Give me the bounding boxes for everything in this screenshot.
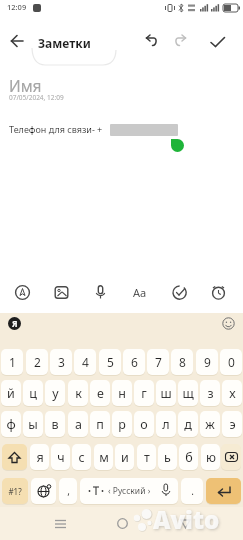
button[interactable] [15,285,30,300]
button[interactable] [180,519,191,529]
button[interactable]: Aa [131,284,149,300]
button[interactable]: о [134,411,154,437]
button[interactable]: к [68,380,88,406]
button[interactable]: б [179,444,198,470]
staticText: в [51,416,59,433]
button[interactable]: , [59,478,77,504]
staticText: Aa [133,285,147,300]
button[interactable] [2,444,27,470]
staticText: й [7,385,15,402]
button[interactable]: с [72,444,91,470]
button[interactable]: ш [156,380,176,406]
button[interactable]: е [90,380,110,406]
staticText: Имя [9,75,42,96]
button[interactable]: ь [158,444,177,470]
staticText: э [229,416,236,433]
button[interactable]: #1? [2,478,28,504]
button[interactable]: з [200,380,220,406]
button[interactable]: 6 [123,349,145,375]
staticText: п [96,416,104,433]
button[interactable] [174,35,190,49]
staticText: ‹ Русский › [108,485,151,497]
staticText: ф [6,416,16,433]
button[interactable]: я [30,444,49,470]
staticText: ч [57,449,65,466]
staticText: #1? [8,486,22,497]
button[interactable] [206,478,241,504]
button[interactable]: Заметки [38,35,91,51]
button[interactable] [10,34,25,48]
button[interactable] [172,285,187,300]
button[interactable]: 7 [147,349,169,375]
staticText: а [75,416,82,433]
button[interactable]: 8 [171,349,193,375]
button[interactable]: т [137,444,156,470]
staticText: е [97,385,104,402]
button[interactable]: й [1,380,21,406]
button[interactable]: ц [23,380,43,406]
staticText: л [162,416,170,433]
staticText: к [75,385,82,402]
staticText: Я [12,318,18,329]
button[interactable] [222,317,235,330]
staticText: з [207,385,214,402]
staticText: 0 [228,354,235,370]
button[interactable] [54,285,69,300]
staticText: б [185,449,193,466]
button[interactable]: ж [200,411,220,437]
button[interactable]: 9 [196,349,218,375]
button[interactable]: ю [201,444,220,470]
staticText: 07/05/2024, 12:09 [9,93,64,102]
button[interactable]: . [181,478,203,504]
button[interactable]: э [222,411,242,437]
staticText: о [140,416,148,433]
staticText: н [118,385,126,402]
staticText: ц [29,385,37,402]
staticText: 8 [179,354,186,370]
staticText: с [78,449,85,466]
button[interactable]: 2 [26,349,48,375]
button[interactable] [211,285,226,300]
staticText: м [99,449,109,466]
button[interactable]: 3 [50,349,72,375]
staticText: и [121,449,129,466]
button[interactable]: ф [1,411,21,437]
button[interactable]: л [156,411,176,437]
button[interactable]: ‹ Русский › [80,478,178,504]
staticText: . [191,484,194,498]
button[interactable]: м [94,444,113,470]
staticText: р [118,416,126,433]
button[interactable]: ы [23,411,43,437]
button[interactable]: 0 [220,349,242,375]
button[interactable]: у [45,380,65,406]
button[interactable] [31,478,56,504]
button[interactable]: г [134,380,154,406]
button[interactable]: н [112,380,132,406]
button[interactable] [94,285,107,300]
button[interactable]: 4 [74,349,96,375]
staticText: Телефон для связи- + [9,123,103,135]
button[interactable]: а [68,411,88,437]
button[interactable] [117,518,128,529]
button[interactable]: р [112,411,132,437]
button[interactable]: д [178,411,198,437]
button[interactable] [142,35,158,49]
staticText: 7 [155,354,162,370]
button[interactable] [221,444,241,470]
button[interactable]: и [115,444,134,470]
staticText: 5 [107,354,114,370]
staticText: щ [182,385,194,402]
button[interactable]: п [90,411,110,437]
button[interactable] [209,35,227,49]
staticText: ж [205,416,215,433]
button[interactable]: Я [8,317,21,330]
staticText: у [52,385,59,402]
button[interactable]: х [222,380,242,406]
button[interactable]: 1 [1,349,23,375]
button[interactable]: ч [51,444,70,470]
button[interactable]: в [45,411,65,437]
button[interactable]: щ [178,380,198,406]
button[interactable] [54,519,67,529]
staticText: ь [164,449,171,466]
button[interactable]: 5 [99,349,121,375]
